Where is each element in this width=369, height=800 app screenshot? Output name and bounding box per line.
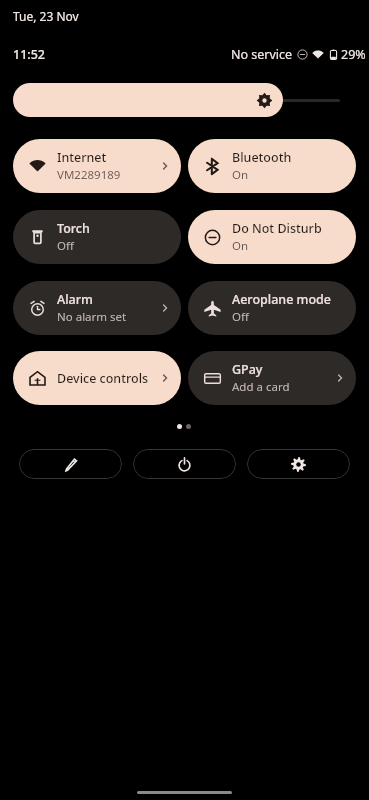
staticText: On [232,167,249,183]
button[interactable]: Alarm [13,281,181,335]
button[interactable] [13,83,340,117]
staticText: No service [231,46,293,63]
staticText: No alarm set [57,309,127,325]
button[interactable]: Settings [247,449,350,479]
staticText: Off [57,238,74,254]
staticText: Alarm [57,291,93,308]
button[interactable]: Edit [19,449,122,479]
staticText: Do Not Disturb [232,220,322,237]
staticText: GPay [232,361,263,378]
staticText: Off [232,309,249,325]
staticText: Device controls [57,370,149,387]
staticText: On [232,238,249,254]
staticText: Torch [57,220,90,237]
button[interactable]: Aeroplane mode [188,281,356,335]
button[interactable]: Torch [13,210,181,264]
staticText: Internet [57,149,107,166]
staticText: Aeroplane mode [232,291,331,308]
button[interactable]: Do Not Disturb [188,210,356,264]
staticText: Add a card [232,379,290,395]
button[interactable]: Internet [13,139,181,193]
staticText: Tue, 23 Nov [13,8,79,24]
button[interactable]: Device controls [13,351,181,405]
staticText: 11:52 [13,46,46,63]
button[interactable]: Power [133,449,236,479]
staticText: VM2289189 [57,167,121,183]
staticText: 29% [341,46,366,63]
button[interactable]: Bluetooth [188,139,356,193]
button[interactable]: GPay [188,351,356,405]
staticText: Bluetooth [232,149,292,166]
